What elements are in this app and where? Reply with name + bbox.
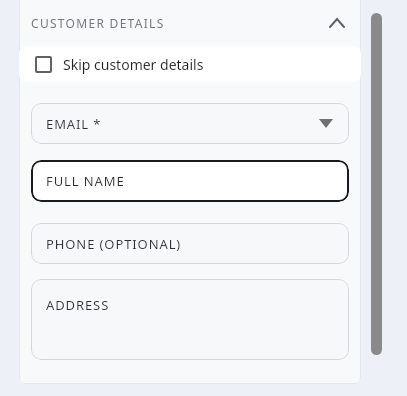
button[interactable]: FULL NAME [31, 160, 349, 202]
other: Open dropdown [319, 119, 333, 128]
staticText: CUSTOMER DETAILS [31, 15, 165, 31]
button[interactable]: Skip customer details [19, 46, 361, 82]
staticText: EMAIL * [46, 115, 102, 133]
button[interactable]: EMAIL * [31, 103, 349, 144]
staticText: FULL NAME [46, 172, 125, 190]
staticText: PHONE (OPTIONAL) [46, 235, 182, 253]
other: Collapse section [325, 11, 349, 35]
staticText: ADDRESS [46, 296, 110, 314]
staticText: Skip customer details [63, 55, 204, 74]
button[interactable]: CUSTOMER DETAILS [19, 0, 361, 46]
button[interactable]: ADDRESS [31, 279, 349, 360]
button[interactable]: PHONE (OPTIONAL) [31, 223, 349, 264]
